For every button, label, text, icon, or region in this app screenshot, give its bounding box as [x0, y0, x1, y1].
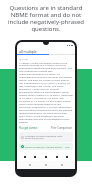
staticText: all multiple	[19, 49, 37, 54]
button[interactable]: Notes	[43, 154, 49, 160]
button[interactable]: Back	[27, 162, 33, 168]
staticText: A healthy 72-year-old woman comes to the…	[19, 61, 73, 124]
button[interactable]: Failure to identify a global defect 40%	[19, 143, 73, 150]
staticText: Transient ischemic paralysis from brain/…	[25, 134, 71, 140]
button[interactable]: Transient ischemic paralysis from brain/…	[19, 132, 73, 142]
staticText: Peer Comparison	[51, 126, 73, 130]
button[interactable]: Pause	[32, 154, 38, 160]
button[interactable]: Home	[43, 162, 49, 168]
staticText: You got correct	[19, 126, 38, 130]
button[interactable]: Previous	[22, 154, 28, 160]
button[interactable]: End block	[64, 154, 70, 160]
button[interactable]: Next	[54, 154, 60, 160]
staticText: Failure to identify a global defect 40%	[25, 145, 71, 148]
staticText: Questions are in standard NBME format an…	[8, 4, 84, 33]
button[interactable]: Recents	[59, 162, 65, 168]
staticText: Q 1 / 40	[19, 57, 28, 60]
